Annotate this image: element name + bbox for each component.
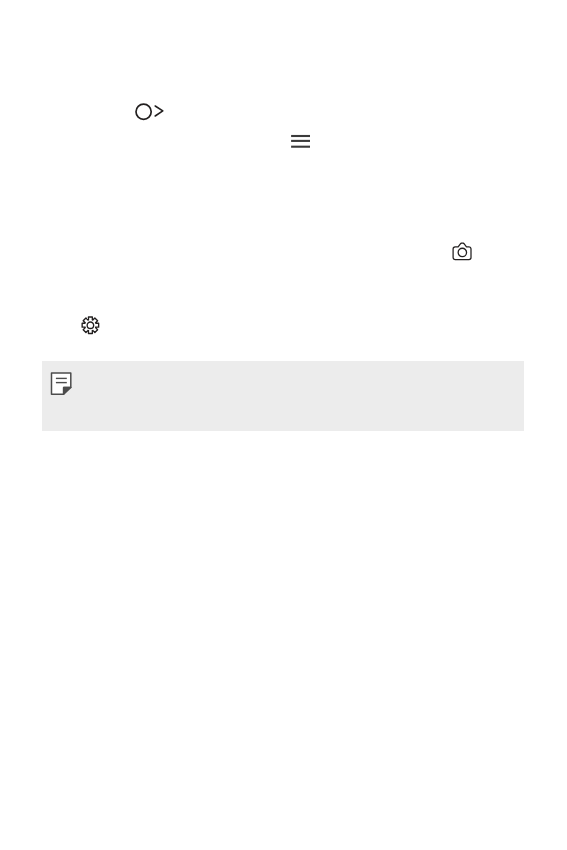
button[interactable]: Next bbox=[132, 101, 166, 123]
button[interactable] bbox=[42, 361, 524, 431]
button[interactable]: Camera bbox=[450, 241, 474, 263]
button[interactable]: Menu bbox=[289, 132, 313, 150]
button[interactable]: Settings bbox=[80, 315, 101, 336]
